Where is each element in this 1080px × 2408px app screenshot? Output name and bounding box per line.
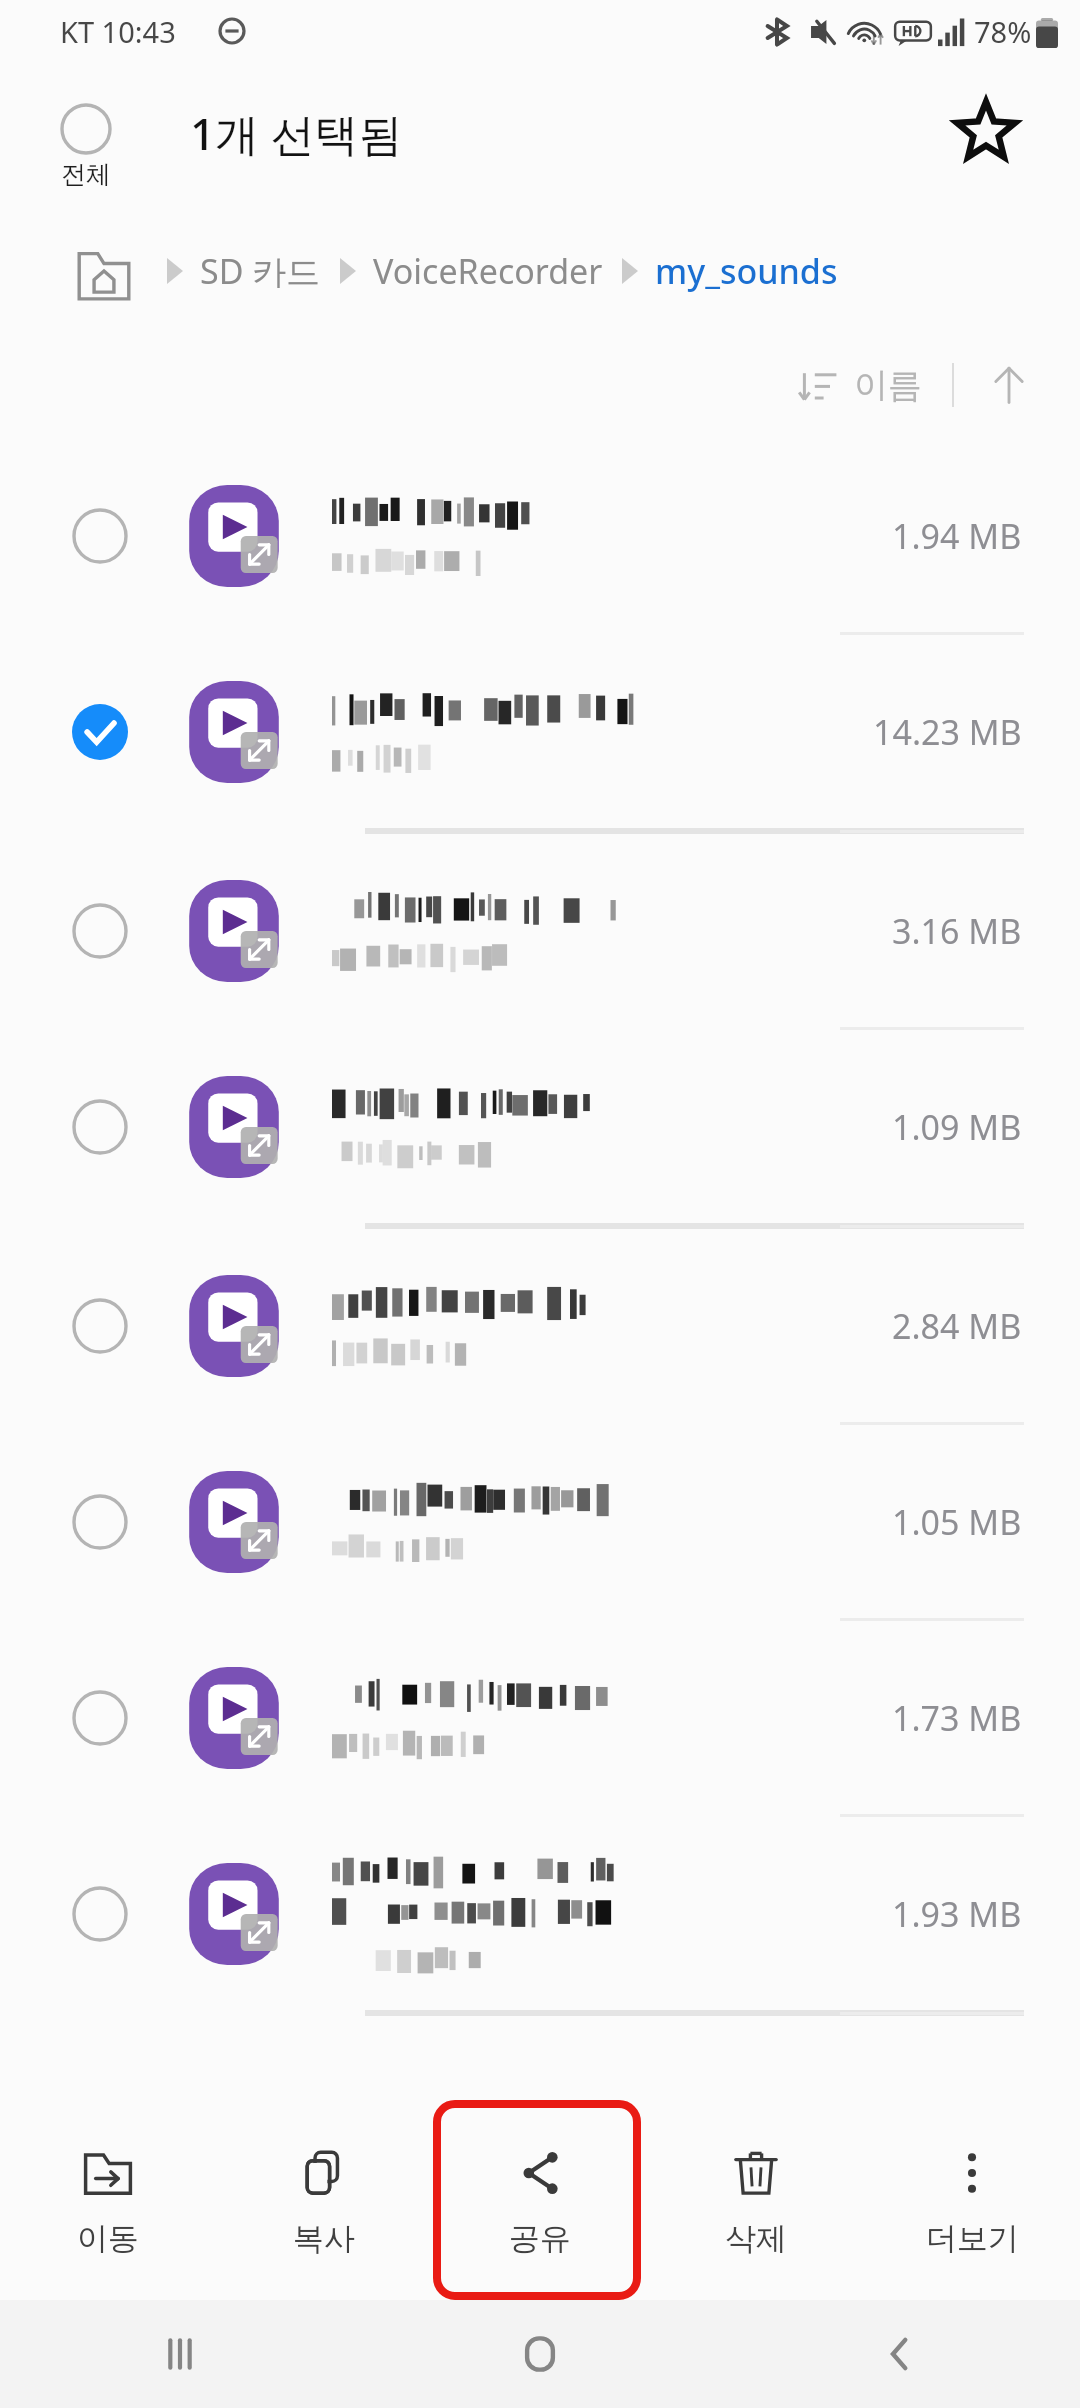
button[interactable]: Add to favourites: [940, 85, 1032, 177]
staticText: 이동: [77, 2219, 139, 2258]
button[interactable]: Back: [720, 2300, 1080, 2408]
staticText: 78%: [974, 12, 1032, 51]
staticText: 1.73 MB: [892, 1695, 1022, 1741]
staticText: 복사: [293, 2219, 355, 2258]
staticText: SD 카드: [200, 248, 321, 294]
button[interactable]: 더보기: [864, 2102, 1080, 2300]
staticText: 공유: [509, 2219, 571, 2258]
button[interactable]: VoiceRecorder: [373, 248, 603, 294]
button[interactable]: Recent apps: [0, 2300, 360, 2408]
button[interactable]: Select item: [68, 1686, 132, 1750]
button[interactable]: Select item: [68, 1095, 132, 1159]
staticText: 3.16 MB: [892, 908, 1022, 954]
button[interactable]: Sort ascending: [972, 348, 1046, 422]
button[interactable]: Select item: [68, 504, 132, 568]
staticText: VoiceRecorder: [373, 248, 603, 294]
button[interactable]: 복사: [216, 2102, 432, 2300]
button[interactable]: Select item: [68, 899, 132, 963]
staticText: 이름: [854, 364, 922, 407]
staticText: 2.84 MB: [892, 1303, 1022, 1349]
button[interactable]: 공유: [432, 2102, 648, 2300]
staticText: 1.94 MB: [892, 513, 1022, 559]
staticText: 더보기: [926, 2219, 1019, 2258]
button[interactable]: Select item: [68, 1882, 132, 1946]
button[interactable]: Select item: [0, 1817, 1080, 2010]
staticText: 삭제: [725, 2219, 787, 2258]
staticText: my_sounds: [655, 248, 838, 294]
button[interactable]: Select item: [0, 834, 1080, 1027]
button[interactable]: Home: [360, 2300, 720, 2408]
button[interactable]: Select item: [0, 439, 1080, 632]
button[interactable]: Select item: [0, 1030, 1080, 1223]
button[interactable]: Select item: [68, 1294, 132, 1358]
button[interactable]: Select item: [0, 635, 1080, 828]
staticText: 1.93 MB: [892, 1891, 1022, 1937]
button[interactable]: Select item: [0, 1229, 1080, 1422]
button[interactable]: 삭제: [648, 2102, 864, 2300]
button[interactable]: my_sounds: [655, 248, 838, 294]
button[interactable]: Select item: [0, 1425, 1080, 1618]
button[interactable]: 전체: [56, 103, 116, 190]
button[interactable]: 이동: [0, 2102, 216, 2300]
button[interactable]: 이름: [790, 354, 930, 417]
staticText: 전체: [61, 159, 111, 190]
staticText: 14.23 MB: [873, 709, 1022, 755]
staticText: 1.09 MB: [892, 1104, 1022, 1150]
button[interactable]: Select item: [68, 700, 132, 764]
button[interactable]: Select item: [0, 1621, 1080, 1814]
button[interactable]: Select item: [68, 1490, 132, 1554]
staticText: KT 10:43: [60, 12, 176, 51]
button[interactable]: SD 카드: [200, 248, 321, 294]
staticText: 1.05 MB: [892, 1499, 1022, 1545]
button[interactable]: Home folder: [66, 233, 142, 309]
staticText: 1개 선택됨: [190, 103, 403, 163]
